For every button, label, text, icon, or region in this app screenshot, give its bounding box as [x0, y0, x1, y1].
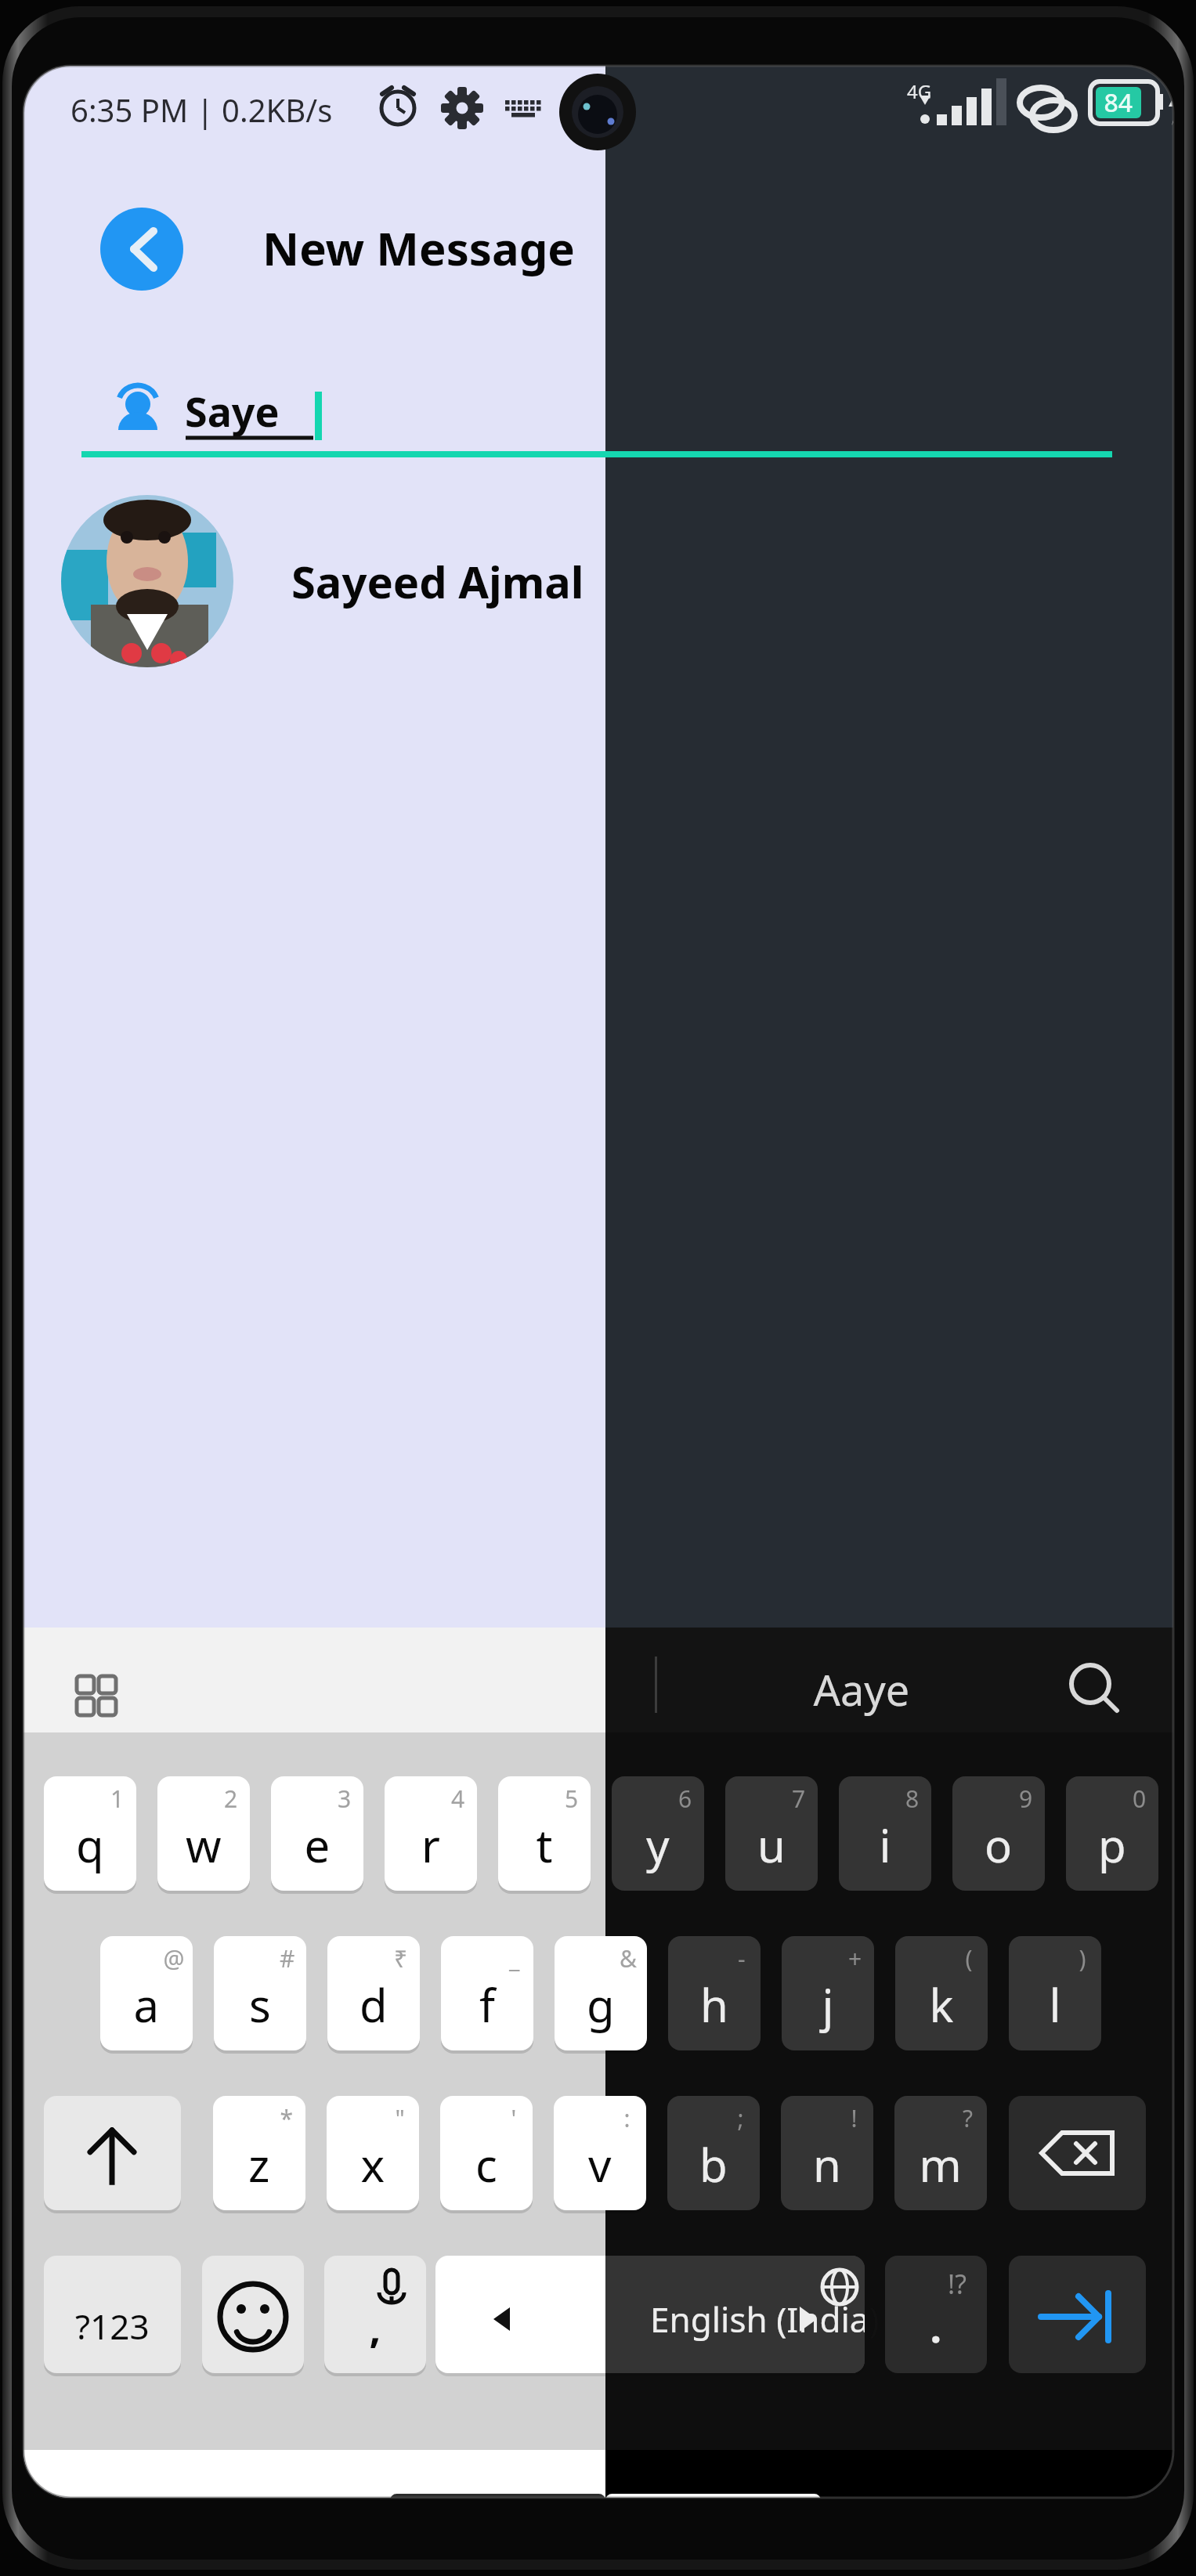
- button[interactable]: [215, 37, 742, 99]
- button[interactable]: Search: [76, 37, 166, 99]
- button[interactable]: [67, 12, 1107, 97]
- button[interactable]: Keyboard layouts: [2, 34, 85, 90]
- button[interactable]: [27, 23, 1140, 145]
- button[interactable]: Back: [6, 6, 90, 90]
